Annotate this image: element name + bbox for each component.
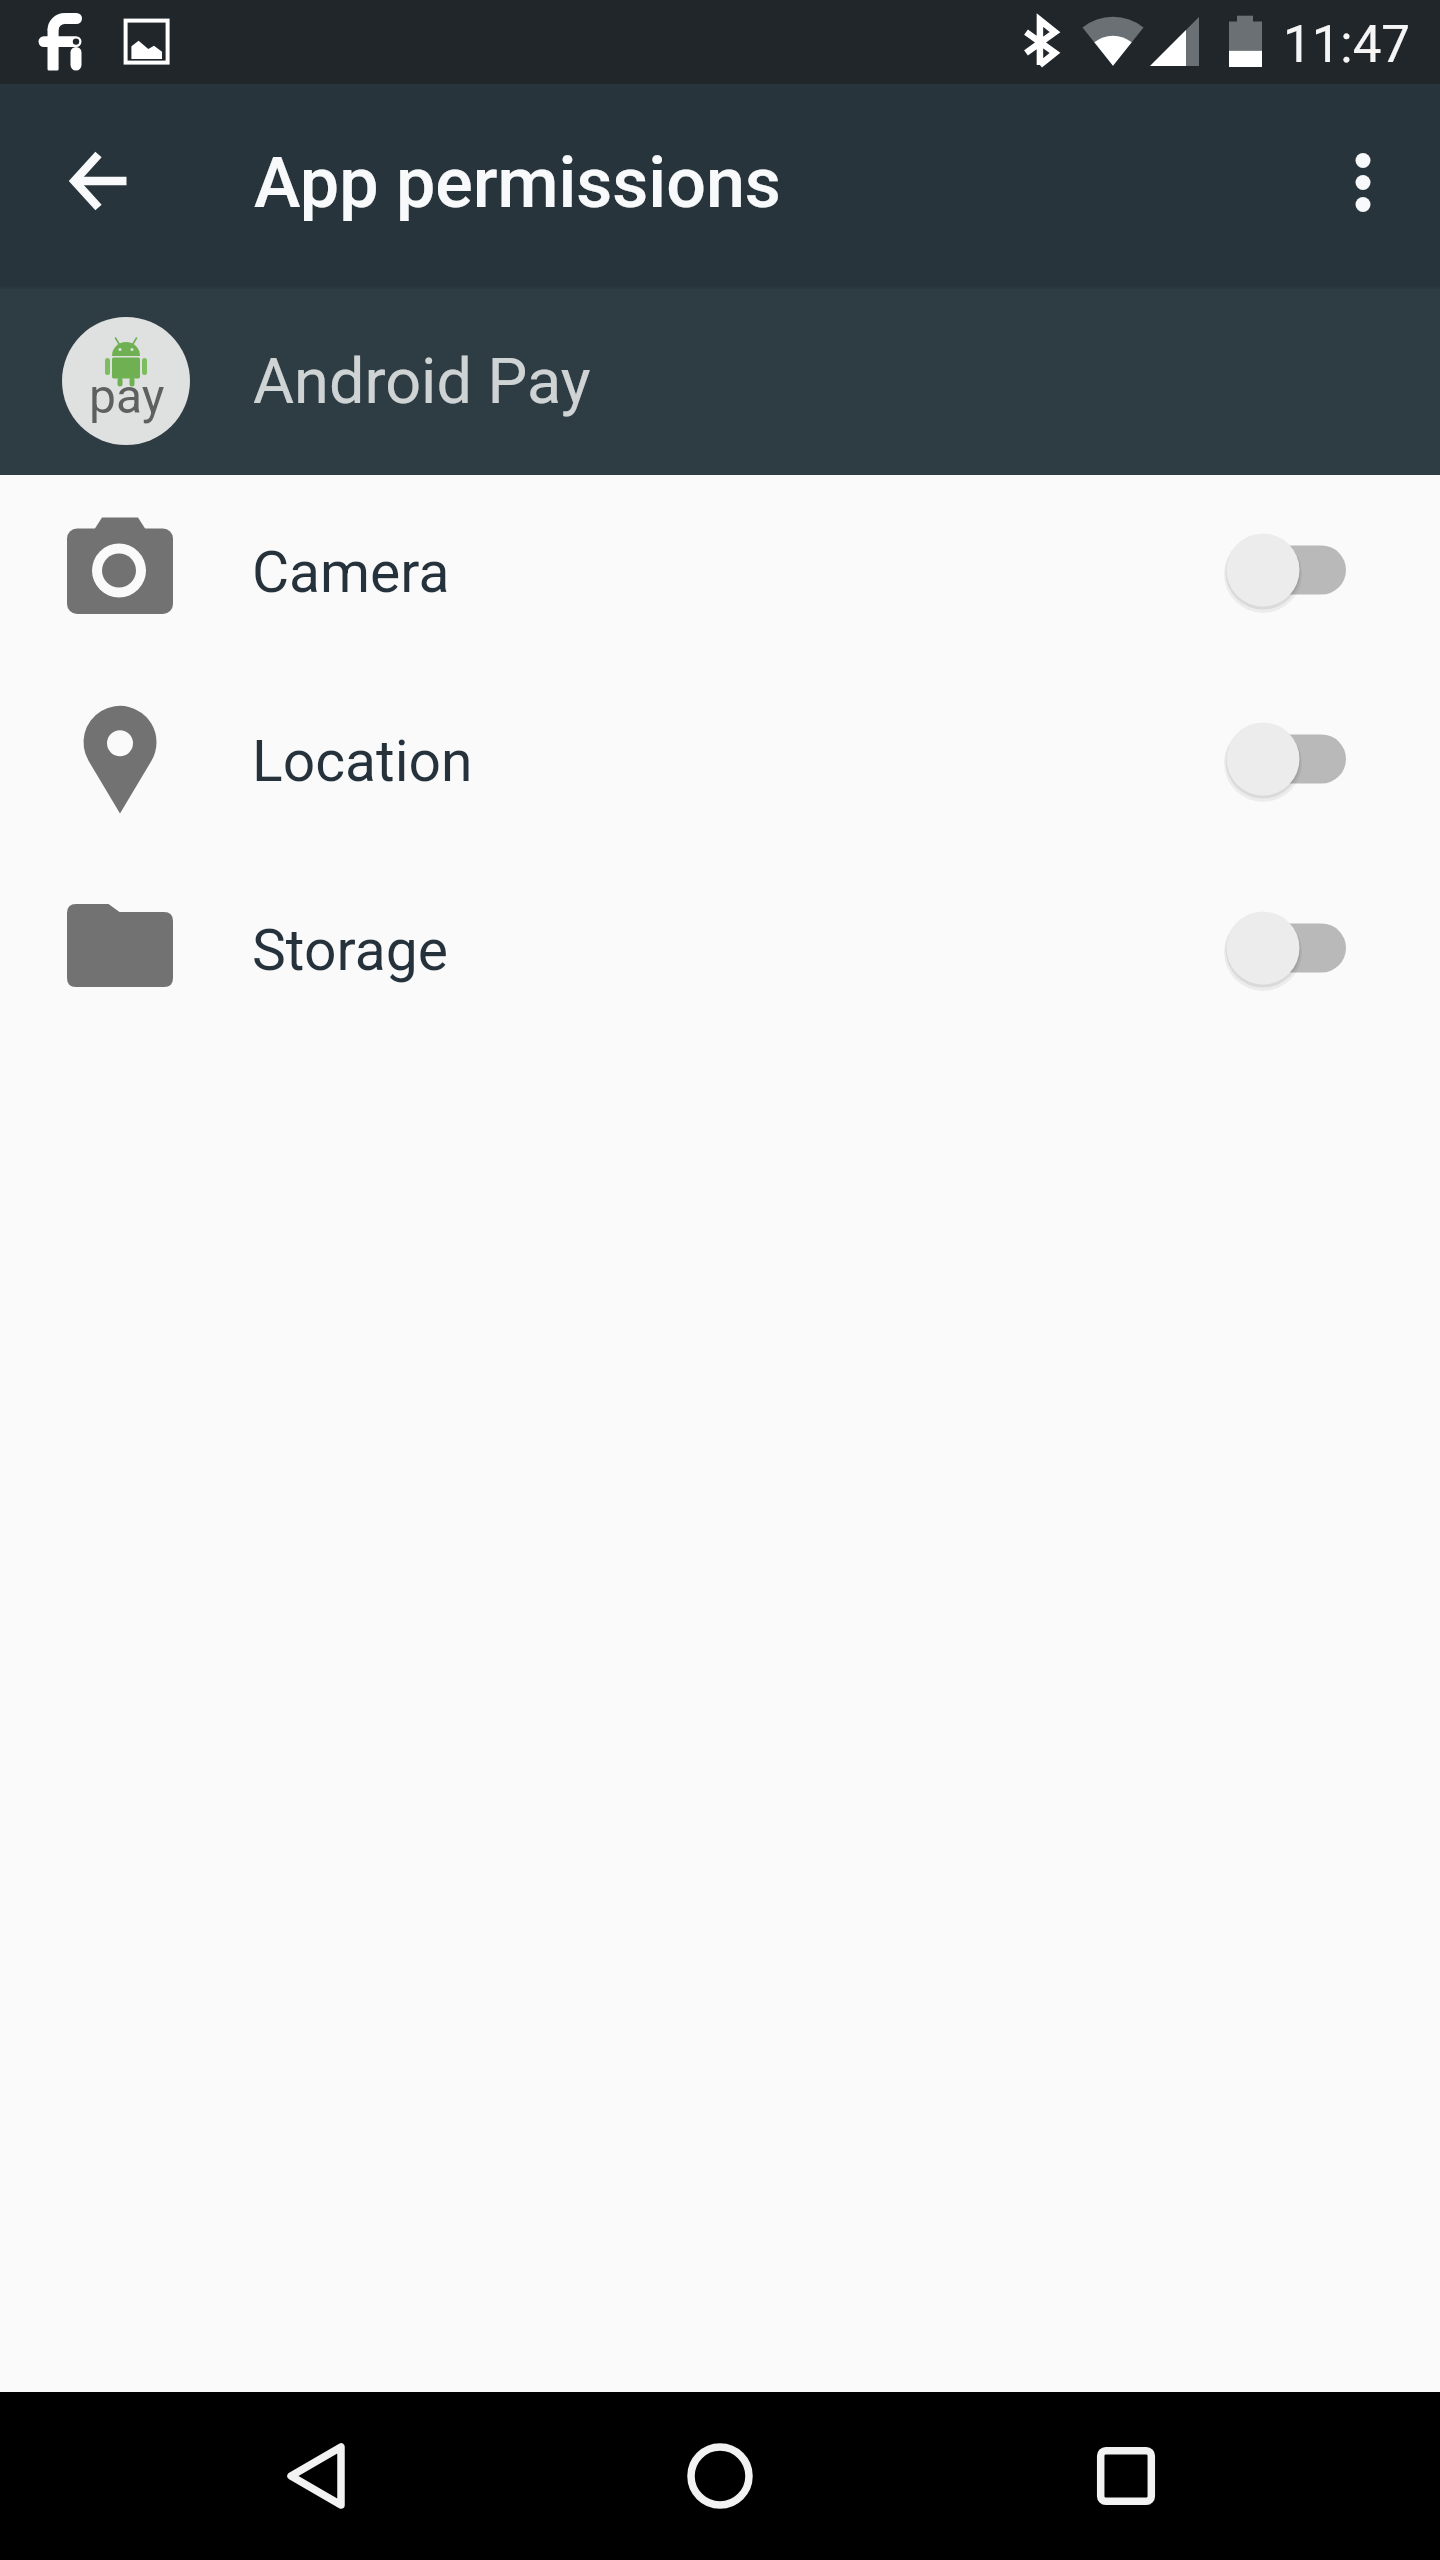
- button[interactable]: More options: [1305, 124, 1421, 240]
- button[interactable]: Location: [0, 664, 1440, 853]
- button[interactable]: Toggle permission: [1226, 530, 1346, 610]
- staticText: Camera: [252, 539, 450, 606]
- staticText: 11:47: [1283, 15, 1411, 75]
- button[interactable]: Home: [645, 2401, 795, 2551]
- staticText: Location: [252, 728, 473, 795]
- button[interactable]: pay: [0, 287, 1440, 475]
- button[interactable]: Back: [241, 2401, 391, 2551]
- button[interactable]: Toggle permission: [1226, 908, 1346, 988]
- staticText: pay: [89, 368, 165, 424]
- button[interactable]: Camera: [0, 475, 1440, 664]
- button[interactable]: Navigate up: [40, 123, 156, 239]
- button[interactable]: Recents: [1051, 2401, 1201, 2551]
- staticText: Android Pay: [253, 345, 591, 419]
- staticText: App permissions: [254, 142, 781, 224]
- button[interactable]: Toggle permission: [1226, 719, 1346, 799]
- staticText: Storage: [252, 917, 448, 984]
- button[interactable]: Storage: [0, 853, 1440, 1042]
